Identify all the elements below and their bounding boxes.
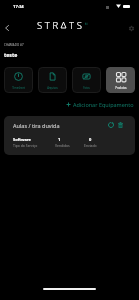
button[interactable]: Excluir — [113, 118, 127, 132]
staticText: Fotos — [83, 86, 90, 90]
button[interactable]: Timesheet — [4, 67, 33, 93]
staticText: 0 — [89, 137, 92, 142]
staticText: STR — [37, 19, 61, 32]
staticText: 1 — [58, 137, 61, 142]
staticText: Arquivos — [47, 86, 58, 90]
button[interactable]: Fotos — [72, 67, 101, 93]
button[interactable]: Aulas / tira duvida — [4, 116, 135, 155]
staticText: ti — [85, 21, 88, 26]
staticText: Software — [13, 137, 31, 142]
button[interactable]: Produtos — [106, 67, 135, 93]
staticText: TS — [69, 19, 85, 32]
staticText: Tipo do Serviço — [13, 143, 38, 148]
staticText: Enviado — [84, 143, 97, 148]
staticText: teste — [4, 51, 18, 58]
staticText: CHAMADO #7 — [4, 43, 24, 47]
staticText: Aulas / tira duvida — [13, 122, 60, 129]
button[interactable]: Adicionar Equipamento — [66, 99, 134, 109]
button[interactable]: Voltar — [0, 21, 13, 35]
staticText: Vendidos — [55, 143, 70, 148]
staticText: Timesheet — [12, 86, 25, 90]
button[interactable]: Atualizar — [104, 118, 118, 132]
staticText: Produtos — [115, 86, 127, 90]
button[interactable]: Arquivos — [38, 67, 67, 93]
staticText: Adicionar Equipamento — [73, 101, 134, 108]
button[interactable]: Configurações — [123, 20, 139, 36]
staticText: 17:34 — [13, 4, 24, 10]
